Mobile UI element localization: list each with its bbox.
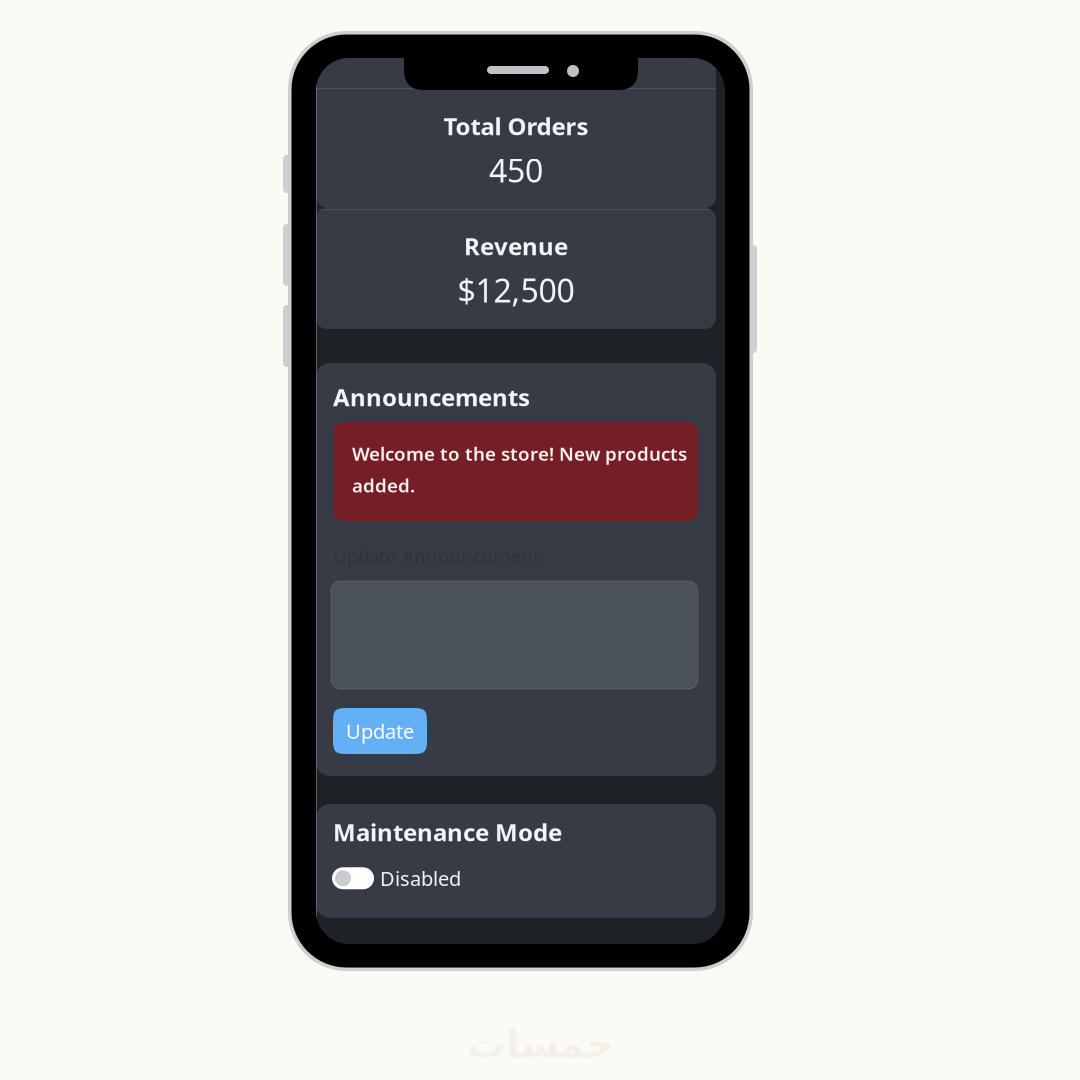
staticText: $12,500 bbox=[457, 269, 574, 311]
staticText: Announcements bbox=[333, 381, 530, 413]
staticText: 450 bbox=[489, 149, 543, 191]
staticText: Revenue bbox=[464, 230, 568, 262]
button[interactable]: Disabled bbox=[332, 865, 461, 892]
button[interactable]: Update bbox=[333, 708, 427, 754]
staticText: Update bbox=[346, 718, 414, 744]
staticText: Total Orders bbox=[443, 110, 588, 142]
staticText: Update Announcement bbox=[333, 543, 540, 568]
staticText: Maintenance Mode bbox=[333, 816, 562, 848]
staticText: Disabled bbox=[380, 865, 461, 892]
staticText: Welcome to the store! New products added… bbox=[352, 441, 687, 498]
staticText: خمسات bbox=[466, 1022, 613, 1066]
